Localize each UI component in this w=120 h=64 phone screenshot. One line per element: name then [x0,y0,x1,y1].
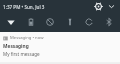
button[interactable]: Settings [93,1,104,12]
staticText: 1:37 PM • Sun, Jul 3 [3,4,45,10]
staticText: My first message [3,51,40,57]
button[interactable]: Expand [106,1,117,12]
staticText: Messaging [3,43,29,50]
button[interactable]: Messaging • now [0,32,120,64]
button[interactable]: Do Not Disturb [42,14,58,30]
staticText: Messaging • now [10,35,44,41]
button[interactable]: Battery Saver [23,14,39,30]
button[interactable]: Flashlight [62,14,78,30]
button[interactable]: Bluetooth [101,14,117,30]
button[interactable]: Wi-Fi [3,14,19,30]
button[interactable]: Auto-rotate [81,14,97,30]
